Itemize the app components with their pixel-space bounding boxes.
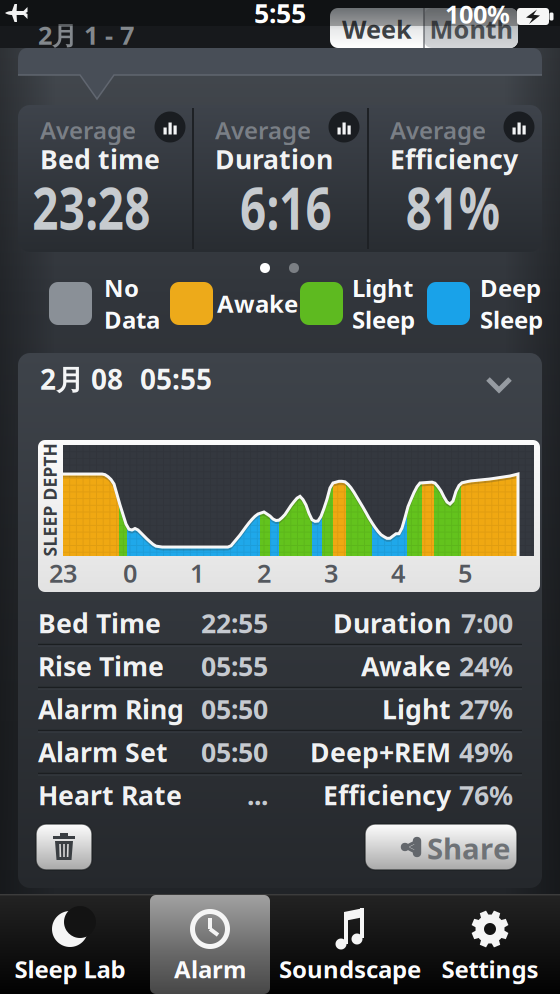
button[interactable]: Week	[330, 9, 424, 49]
staticText: Bed time	[40, 141, 160, 177]
staticText: Week	[342, 12, 412, 46]
staticText: 05:55	[201, 648, 268, 684]
staticText: Alarm Ring	[38, 691, 184, 727]
staticText: Alarm Set	[38, 734, 168, 770]
button[interactable]: Statistics	[503, 111, 534, 142]
staticText: Efficiency	[323, 777, 451, 813]
staticText: Awake	[361, 648, 451, 684]
staticText: 23:28	[15, 168, 167, 246]
staticText: Deep+REM	[310, 734, 451, 770]
button[interactable]: Collapse day	[18, 353, 542, 405]
button[interactable]: Soundscape	[280, 894, 420, 990]
staticText: 5:55	[254, 0, 306, 31]
staticText: Duration	[333, 605, 451, 641]
staticText: Average	[40, 114, 136, 146]
staticText: Soundscape	[279, 953, 421, 985]
staticText: Light	[382, 691, 451, 727]
staticText: Sleep	[352, 303, 415, 335]
staticText: Sleep Lab	[14, 953, 125, 985]
staticText: Awake	[217, 288, 298, 319]
staticText: Sleep	[480, 303, 543, 335]
staticText: 3	[324, 556, 338, 590]
staticText: Settings	[441, 953, 538, 985]
staticText: 1	[190, 556, 204, 590]
button[interactable]: Sleep Lab	[0, 894, 140, 990]
staticText: 24%	[459, 648, 513, 684]
staticText: Average	[215, 114, 311, 146]
staticText: 23	[49, 556, 77, 590]
staticText: 7:00	[461, 605, 513, 641]
staticText: Alarm	[174, 953, 246, 985]
button[interactable]: Month	[424, 9, 518, 49]
staticText: Duration	[215, 141, 333, 177]
staticText: SLEEP DEPTH	[0, 488, 106, 511]
staticText: 5	[458, 556, 472, 590]
staticText: 81%	[392, 168, 513, 246]
button[interactable]: Delete	[36, 824, 92, 870]
staticText: 05:50	[201, 734, 268, 770]
staticText: 05:55	[140, 360, 212, 398]
staticText: 2月 1 - 7	[38, 18, 134, 52]
staticText: 2月 08	[40, 360, 123, 398]
button[interactable]: Statistics	[154, 111, 185, 142]
staticText: Heart Rate	[38, 777, 182, 813]
button[interactable]: Settings	[420, 894, 560, 990]
button[interactable]: Alarm	[140, 894, 280, 990]
staticText: No	[104, 272, 139, 303]
staticText: 4	[391, 556, 405, 590]
staticText: Efficiency	[390, 141, 518, 177]
staticText: 27%	[459, 691, 513, 727]
staticText: Share	[427, 828, 511, 867]
staticText: 22:55	[201, 605, 268, 641]
staticText: Light	[352, 272, 413, 303]
button[interactable]: Share	[365, 824, 517, 870]
staticText: Data	[104, 303, 160, 335]
staticText: 05:50	[201, 691, 268, 727]
staticText: Average	[390, 114, 486, 146]
staticText: Bed Time	[38, 605, 161, 641]
staticText: 0	[123, 556, 137, 590]
staticText: 100%	[445, 0, 510, 31]
staticText: Month	[429, 12, 512, 46]
staticText: 76%	[459, 777, 513, 813]
staticText: Deep	[480, 272, 541, 303]
staticText: 2	[257, 556, 271, 590]
button[interactable]: Statistics	[328, 111, 359, 142]
staticText: ...	[247, 777, 268, 813]
staticText: Rise Time	[38, 648, 164, 684]
staticText: 49%	[459, 734, 513, 770]
staticText: 6:16	[227, 168, 345, 246]
